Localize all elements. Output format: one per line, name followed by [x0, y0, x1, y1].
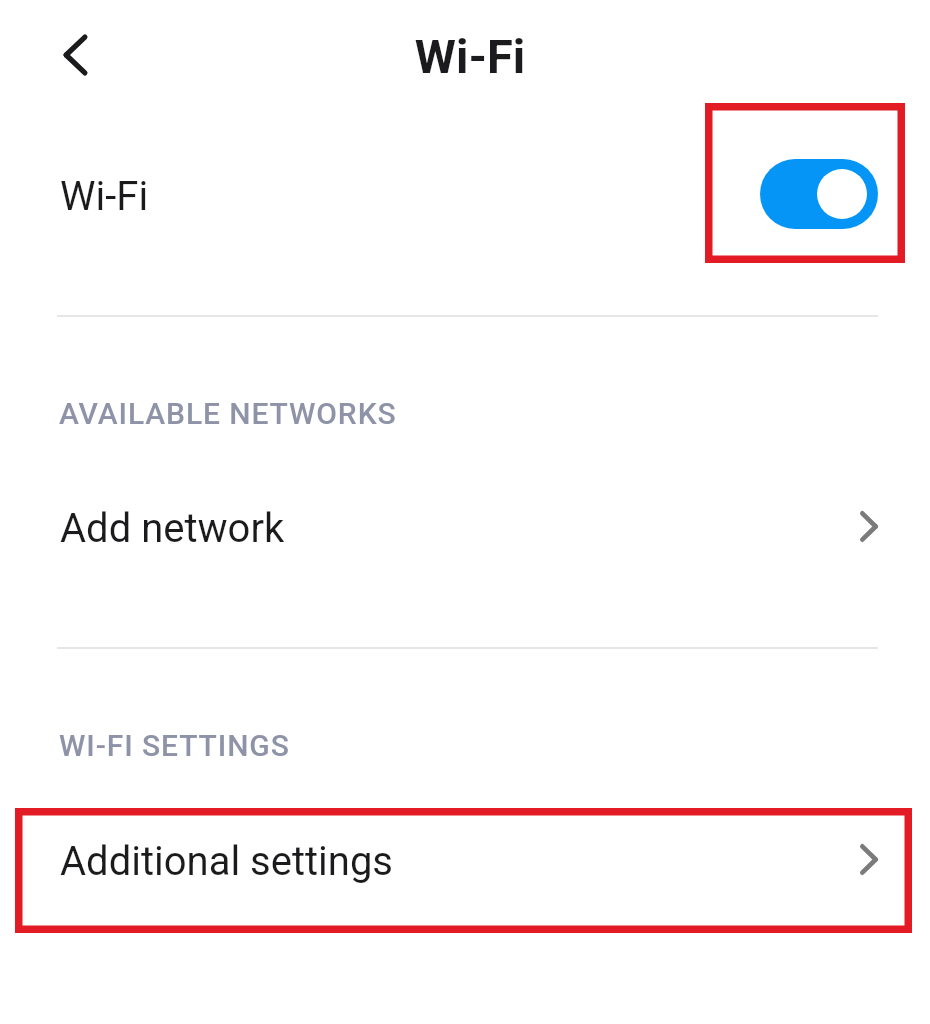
staticText: Add network	[60, 505, 285, 552]
staticText: Wi-Fi	[5, 29, 930, 84]
staticText: AVAILABLE NETWORKS	[59, 396, 397, 431]
button[interactable]: Add network	[0, 475, 930, 581]
button[interactable]: Wi-Fi	[0, 133, 930, 259]
staticText: WI-FI SETTINGS	[59, 728, 290, 763]
staticText: Wi-Fi	[60, 173, 149, 220]
button[interactable]: Turn Wi-Fi off	[760, 159, 878, 229]
staticText: Additional settings	[60, 838, 394, 885]
button[interactable]: Additional settings	[0, 799, 930, 924]
button[interactable]: Navigate back	[40, 20, 110, 90]
